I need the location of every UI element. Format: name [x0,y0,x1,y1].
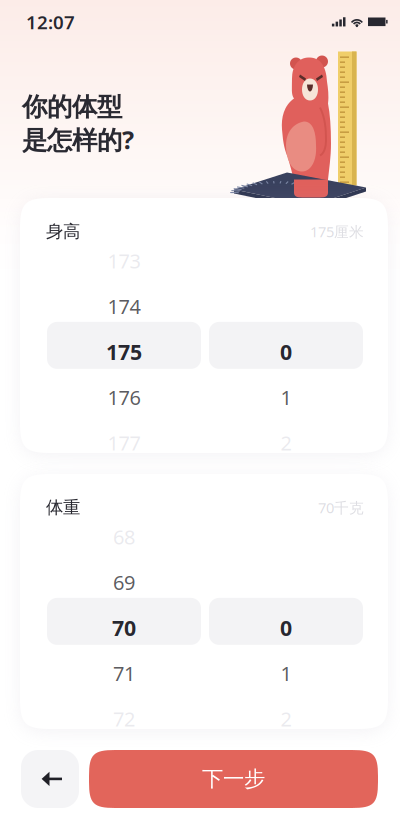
staticText: 175 [106,337,142,366]
staticText: 1 [280,384,291,410]
staticText: 177 [107,429,140,456]
staticText: 69 [113,569,135,595]
staticText: 2 [280,429,291,456]
staticText: 12:07 [26,10,75,34]
staticText: 0 [280,613,292,642]
staticText: 174 [107,293,140,319]
staticText: 体重 [46,497,80,518]
button[interactable]: 返回 [21,750,79,808]
staticText: 身高 [46,221,80,242]
staticText: 1 [280,660,291,686]
staticText: 你的体型 是怎样的? [22,91,134,156]
staticText: 176 [107,384,140,410]
staticText: 175厘米 [310,222,364,241]
staticText: 70千克 [318,498,364,517]
staticText: 173 [107,247,140,274]
staticText: 72 [113,705,135,732]
staticText: 下一步 [202,766,265,792]
staticText: 71 [113,660,135,686]
button[interactable]: 下一步 [89,750,378,808]
staticText: 2 [280,705,291,732]
staticText: 0 [280,337,292,366]
staticText: 70 [112,613,136,642]
staticText: 68 [113,523,135,550]
